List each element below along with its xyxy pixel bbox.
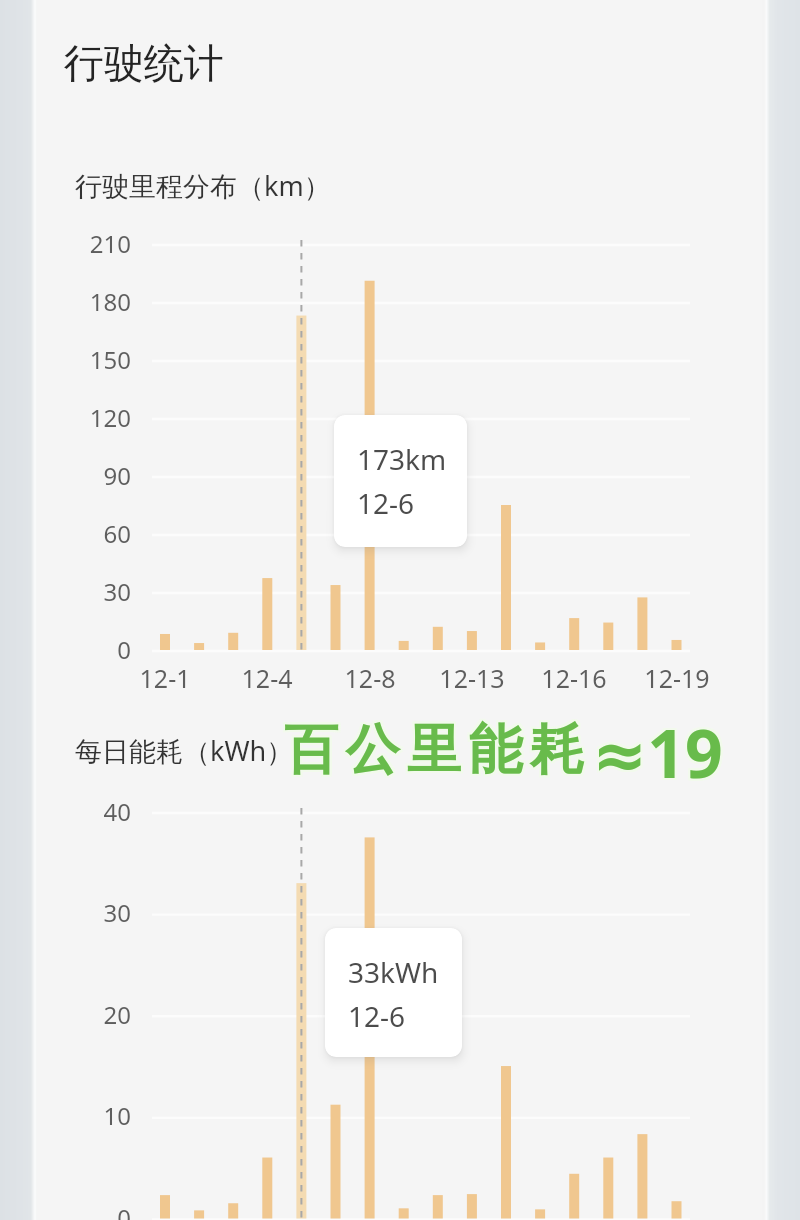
- staticText: 百公里能耗: [282, 716, 590, 784]
- staticText: 百公里能耗: [286, 714, 594, 782]
- staticText: 150: [60, 343, 131, 376]
- staticText: 10: [60, 1099, 131, 1132]
- staticText: 12-19: [627, 661, 727, 695]
- staticText: 百公里能耗: [282, 714, 590, 782]
- staticText: ≈19: [592, 709, 723, 799]
- button[interactable]: 33kWh: [325, 928, 462, 1057]
- button[interactable]: 173km: [334, 415, 467, 547]
- staticText: 90: [60, 459, 131, 492]
- staticText: ≈19: [592, 707, 723, 797]
- staticText: 12-16: [524, 661, 624, 695]
- staticText: 12-6: [357, 484, 415, 522]
- staticText: 30: [60, 575, 131, 608]
- staticText: 180: [60, 285, 131, 318]
- staticText: 12-1: [115, 661, 215, 695]
- staticText: 20: [60, 998, 131, 1031]
- staticText: 12-4: [217, 661, 317, 695]
- staticText: 行驶统计: [64, 38, 224, 88]
- staticText: 30: [60, 896, 131, 929]
- staticText: 210: [60, 227, 131, 260]
- staticText: 百公里能耗: [284, 718, 592, 786]
- staticText: ≈19: [590, 705, 721, 795]
- staticText: 百公里能耗: [286, 716, 594, 784]
- staticText: 173km: [357, 440, 447, 478]
- staticText: 0: [60, 1201, 131, 1220]
- staticText: 60: [60, 517, 131, 550]
- staticText: 行驶里程分布（km）: [75, 167, 331, 204]
- staticText: ≈19: [594, 707, 725, 797]
- staticText: ≈19: [590, 709, 721, 799]
- staticText: 百公里能耗: [286, 718, 594, 786]
- staticText: 百公里能耗: [282, 718, 590, 786]
- staticText: 百公里能耗: [284, 714, 592, 782]
- staticText: ≈19: [594, 705, 725, 795]
- staticText: 120: [60, 401, 131, 434]
- staticText: 40: [60, 795, 131, 828]
- staticText: 12-6: [348, 997, 406, 1035]
- staticText: ≈19: [592, 705, 723, 795]
- staticText: 12-13: [422, 661, 522, 695]
- staticText: 0: [60, 633, 131, 666]
- staticText: ≈19: [590, 707, 721, 797]
- staticText: ≈19: [594, 709, 725, 799]
- staticText: 百公里能耗: [284, 716, 592, 784]
- staticText: 每日能耗（kWh）: [75, 732, 294, 769]
- staticText: 12-8: [320, 661, 420, 695]
- staticText: 33kWh: [348, 953, 439, 991]
